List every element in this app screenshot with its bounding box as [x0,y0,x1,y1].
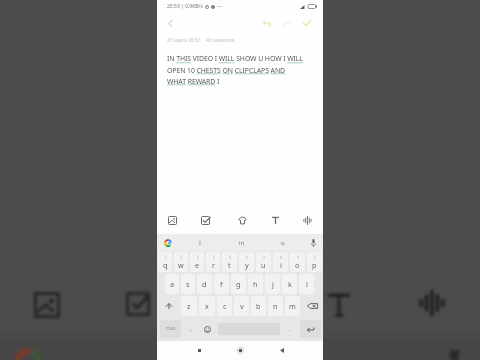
button[interactable]: Enter [300,320,321,338]
staticText: l [306,279,308,289]
staticText: s [186,279,190,289]
staticText: c [223,301,227,311]
staticText: 8 [280,255,282,260]
button[interactable]: Insert image [164,212,180,228]
staticText: f [220,279,223,289]
staticText: t [228,260,231,270]
staticText: x [205,301,209,311]
staticText: o [281,239,285,247]
button[interactable]: 2 [174,252,188,272]
button[interactable]: 8 [273,252,288,272]
button[interactable]: f [214,274,229,294]
staticText: 0 [314,255,316,260]
staticText: in [239,239,245,247]
staticText: , [190,325,192,333]
button[interactable]: Emoji [197,317,217,341]
staticText: 5 [229,255,231,260]
staticText: n [273,301,278,311]
staticText: 1 [165,255,167,260]
staticText: z [187,301,191,311]
button[interactable]: b [251,296,266,316]
button[interactable]: Back [275,344,288,357]
staticText: g [236,279,241,289]
button[interactable]: Redo [279,15,294,30]
button[interactable]: Undo [259,15,274,30]
staticText: 20:53 | 0,9KB/s [167,3,203,10]
staticText: b [256,301,261,311]
button[interactable]: c [217,296,232,316]
button[interactable]: Back [163,16,177,30]
button[interactable]: d [197,274,212,294]
button[interactable]: h [248,274,263,294]
button[interactable]: Recents [193,344,206,357]
staticText: i [280,260,282,270]
staticText: 25 марта 20:52 46 символов [167,37,235,43]
button[interactable]: Text format [267,212,283,228]
button[interactable]: I [179,234,221,251]
staticText: 9 [297,255,299,260]
staticText: e [195,260,200,270]
staticText: 7 [263,255,265,260]
staticText: 4 [213,255,215,260]
button[interactable]: 5 [222,252,237,272]
button[interactable]: Checklist [197,212,213,228]
staticText: o [295,260,300,270]
button[interactable]: n [268,296,283,316]
button[interactable]: z [181,296,197,316]
button[interactable]: o [262,234,303,251]
button[interactable]: 3 [190,252,204,272]
button[interactable]: Done [299,15,314,30]
staticText: w [178,260,184,270]
staticText: a [170,279,175,289]
button[interactable]: Backspace [301,295,323,317]
button[interactable]: Voice input [303,234,323,251]
button[interactable]: Doodle [234,212,250,228]
button[interactable]: j [265,274,280,294]
button[interactable]: in [221,234,262,251]
staticText: r [212,260,215,270]
button[interactable]: 1 [158,252,172,272]
button[interactable]: 7 [256,252,271,272]
staticText: u [261,260,266,270]
button[interactable]: m [285,296,300,316]
button[interactable]: Record audio [299,212,315,228]
staticText: v [240,301,244,311]
staticText: — [217,3,223,10]
staticText: d [202,279,207,289]
button[interactable]: Shift [157,295,180,317]
button[interactable]: 4 [206,252,220,272]
button[interactable]: Home [234,344,247,357]
staticText: I [199,239,201,247]
button[interactable]: v [234,296,249,316]
staticText: m [289,301,296,311]
staticText: p [312,260,317,270]
button[interactable]: ?123 [160,320,181,338]
button[interactable]: 9 [290,252,305,272]
button[interactable]: a [165,274,179,294]
staticText: y [245,260,249,270]
button[interactable]: k [282,274,297,294]
button[interactable]: 6 [239,252,254,272]
staticText: k [288,279,292,289]
staticText: ?123 [166,326,176,332]
button[interactable]: s [181,274,195,294]
button[interactable]: , [184,317,197,341]
staticText: q [163,260,168,270]
staticText: 3 [197,255,199,260]
staticText: 2 [180,255,182,260]
button[interactable]: Google [157,234,179,251]
button[interactable]: l [299,274,314,294]
staticText: h [253,279,258,289]
staticText: j [272,279,274,289]
button[interactable]: g [231,274,246,294]
button[interactable]: x [199,296,215,316]
button[interactable]: 0 [307,252,322,272]
staticText: 6 [246,255,248,260]
staticText: IN THIS VIDEO I WILL SHOW U HOW I WILL O… [167,54,303,86]
staticText: . [289,325,291,333]
